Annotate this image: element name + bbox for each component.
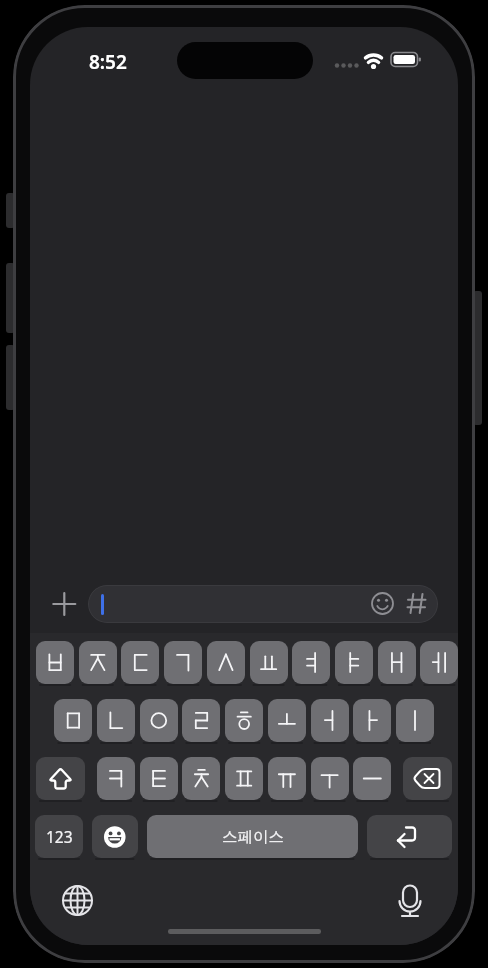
button[interactable] <box>182 699 220 742</box>
button[interactable] <box>140 757 178 800</box>
button[interactable] <box>311 699 349 742</box>
button[interactable] <box>54 699 92 742</box>
button[interactable] <box>335 641 373 684</box>
button[interactable] <box>225 699 263 742</box>
button[interactable] <box>353 699 391 742</box>
button[interactable] <box>97 757 135 800</box>
button[interactable] <box>250 641 288 684</box>
button[interactable] <box>268 757 306 800</box>
button[interactable] <box>367 815 452 858</box>
button[interactable] <box>140 699 178 742</box>
button[interactable] <box>57 880 98 921</box>
button[interactable] <box>88 585 438 623</box>
button[interactable] <box>403 757 452 800</box>
button[interactable] <box>36 641 74 684</box>
button[interactable] <box>36 757 85 800</box>
button[interactable] <box>121 641 159 684</box>
button[interactable] <box>164 641 202 684</box>
button[interactable] <box>92 815 138 858</box>
button[interactable]: 스페이스 <box>147 815 358 858</box>
button[interactable] <box>292 641 330 684</box>
staticText: 123 <box>46 826 73 847</box>
button[interactable] <box>268 699 306 742</box>
button[interactable] <box>97 699 135 742</box>
button[interactable] <box>182 757 220 800</box>
staticText: 스페이스 <box>222 827 284 847</box>
button[interactable] <box>225 757 263 800</box>
button[interactable] <box>79 641 117 684</box>
staticText: 8:52 <box>89 49 127 71</box>
button[interactable] <box>378 641 416 684</box>
button[interactable] <box>396 699 434 742</box>
button[interactable] <box>311 757 349 800</box>
button[interactable]: 123 <box>35 815 83 858</box>
button[interactable] <box>353 757 391 800</box>
button[interactable] <box>420 641 458 684</box>
button[interactable] <box>389 880 430 921</box>
button[interactable] <box>207 641 245 684</box>
